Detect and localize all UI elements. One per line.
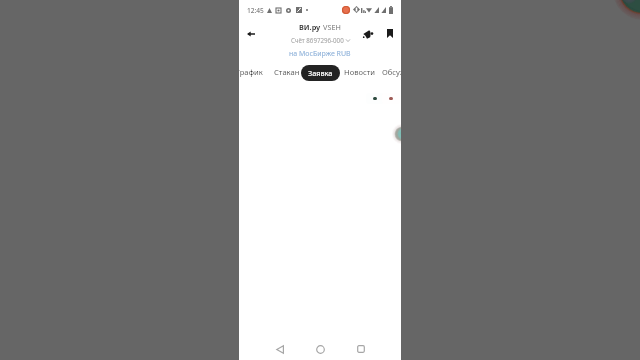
button[interactable]: Новости xyxy=(344,66,375,78)
button[interactable]: Buy xyxy=(366,93,384,104)
staticText: на МосБирже RUB xyxy=(289,49,351,59)
button[interactable]: Home xyxy=(311,340,329,358)
button[interactable]: Обсуждение xyxy=(382,66,401,78)
button[interactable]: Sell xyxy=(382,93,400,104)
staticText: Стакан xyxy=(274,67,300,77)
button[interactable]: Assistant xyxy=(385,117,401,147)
button[interactable]: Заявка xyxy=(301,65,340,81)
button[interactable]: на МосБирже RUB xyxy=(289,49,351,59)
button[interactable]: Bookmark xyxy=(382,26,397,41)
staticText: Новости xyxy=(344,67,375,77)
staticText: Счёт 8697296-000 xyxy=(291,36,344,44)
button[interactable]: Recents xyxy=(352,340,370,358)
staticText: 12:45 xyxy=(247,6,264,15)
staticText: VSEH xyxy=(323,22,341,32)
button[interactable]: Стакан xyxy=(274,66,300,78)
staticText: Обсуждение xyxy=(382,67,401,77)
staticText: График xyxy=(239,67,263,77)
staticText: ВИ.ру xyxy=(299,22,321,32)
button[interactable]: Back xyxy=(242,25,260,43)
button[interactable]: График xyxy=(239,66,263,78)
button[interactable]: Notifications xyxy=(360,26,376,42)
staticText: Заявка xyxy=(308,68,333,78)
button[interactable]: Back xyxy=(271,340,289,358)
